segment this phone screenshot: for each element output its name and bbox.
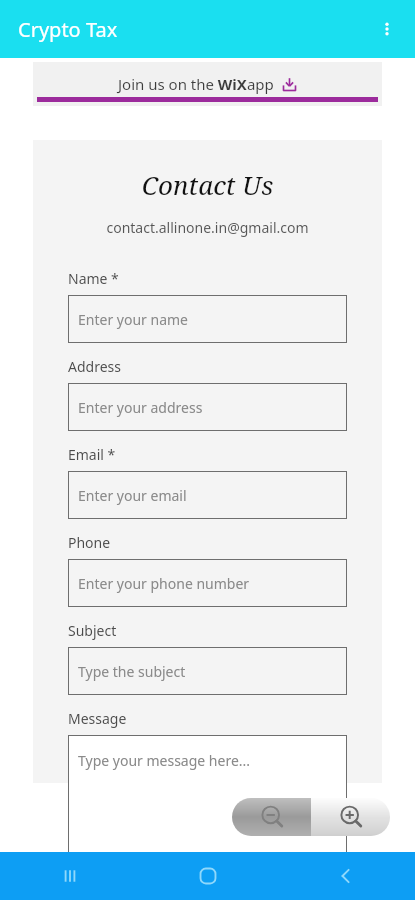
staticText: Name * — [68, 269, 119, 288]
staticText: Email * — [68, 445, 116, 464]
staticText: Enter your email — [78, 486, 187, 505]
staticText: Phone — [68, 533, 111, 552]
staticText: Message — [68, 709, 127, 728]
button[interactable]: Type the subject — [68, 647, 347, 695]
staticText: Contact Us — [33, 167, 382, 202]
button[interactable]: Enter your email — [68, 471, 347, 519]
staticText: Enter your phone number — [78, 574, 250, 593]
staticText: Join us on the WiXapp — [118, 74, 274, 94]
button[interactable]: More options — [367, 9, 407, 49]
button[interactable]: Home — [139, 852, 277, 900]
button[interactable]: Enter your address — [68, 383, 347, 431]
button[interactable]: Enter your phone number — [68, 559, 347, 607]
staticText: Crypto Tax — [18, 16, 118, 43]
staticText: Enter your name — [78, 310, 188, 329]
staticText: Type the subject — [78, 662, 186, 681]
staticText: Type your message here... — [78, 751, 251, 770]
button[interactable]: Join us on the WiXapp — [33, 62, 382, 106]
button[interactable]: Zoom out — [232, 798, 311, 836]
staticText: Subject — [68, 621, 117, 640]
button[interactable]: Recents — [0, 852, 139, 900]
staticText: Enter your address — [78, 398, 203, 417]
button[interactable]: Zoom in — [311, 798, 390, 836]
button[interactable]: Back — [277, 852, 415, 900]
button[interactable]: Type your message here... — [68, 735, 347, 895]
staticText: contact.allinone.in@gmail.com — [33, 218, 382, 237]
button[interactable]: Enter your name — [68, 295, 347, 343]
staticText: Address — [68, 357, 121, 376]
